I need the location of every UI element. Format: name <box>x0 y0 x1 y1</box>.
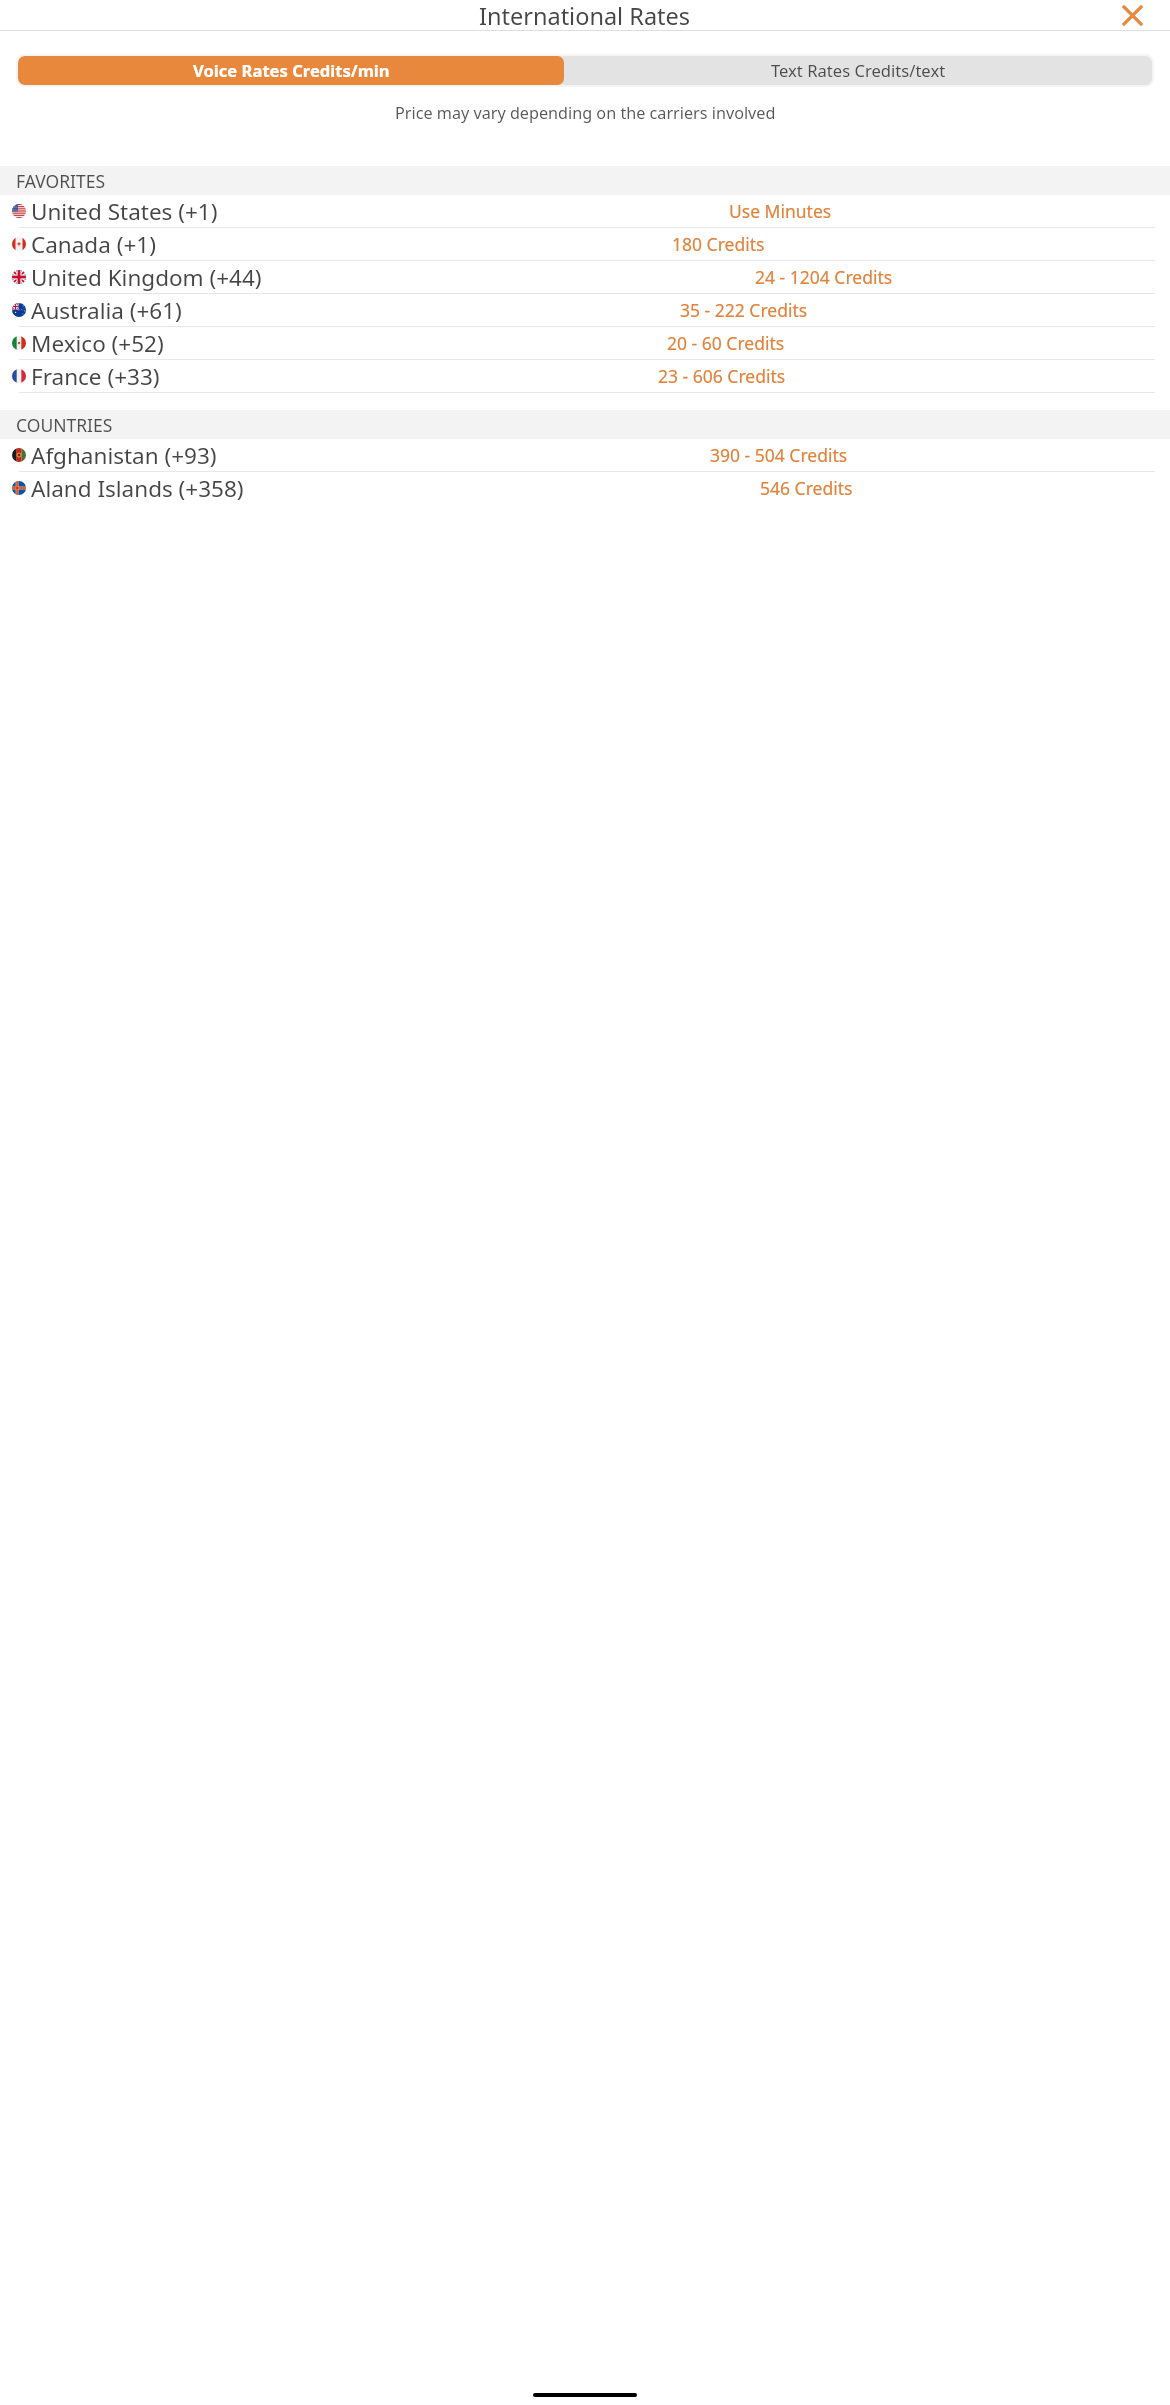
staticText: 35 - 222 Credits <box>680 298 808 322</box>
button[interactable]: United Kingdom (+44) <box>0 261 1170 293</box>
staticText: 180 Credits <box>672 232 765 256</box>
staticText: United States (+1) <box>31 196 218 227</box>
staticText: 546 Credits <box>760 476 853 500</box>
staticText: 20 - 60 Credits <box>667 331 785 355</box>
staticText: International Rates <box>479 0 691 30</box>
staticText: Australia (+61) <box>31 295 182 326</box>
button[interactable]: Mexico (+52) <box>0 327 1170 359</box>
staticText: FAVORITES <box>16 169 106 193</box>
button[interactable]: United States (+1) <box>0 195 1170 227</box>
staticText: Use Minutes <box>729 199 832 223</box>
staticText: Voice Rates Credits/min <box>193 59 390 82</box>
staticText: COUNTRIES <box>16 413 113 437</box>
staticText: Price may vary depending on the carriers… <box>395 102 776 124</box>
button[interactable]: Close <box>1115 0 1149 30</box>
staticText: 24 - 1204 Credits <box>755 265 893 289</box>
button[interactable]: Afghanistan (+93) <box>0 439 1170 471</box>
staticText: 23 - 606 Credits <box>658 364 786 388</box>
staticText: 390 - 504 Credits <box>710 443 848 467</box>
button[interactable]: France (+33) <box>0 360 1170 392</box>
button[interactable]: Australia (+61) <box>0 294 1170 326</box>
staticText: Aland Islands (+358) <box>31 473 244 504</box>
staticText: Text Rates Credits/text <box>771 59 946 82</box>
staticText: Afghanistan (+93) <box>31 440 217 471</box>
button[interactable]: Canada (+1) <box>0 228 1170 260</box>
button[interactable]: Text Rates Credits/text <box>564 56 1152 85</box>
button[interactable]: Voice Rates Credits/min <box>18 56 564 85</box>
staticText: United Kingdom (+44) <box>31 262 262 293</box>
staticText: France (+33) <box>31 361 160 392</box>
button[interactable]: Aland Islands (+358) <box>0 472 1170 504</box>
staticText: Mexico (+52) <box>31 328 164 359</box>
staticText: Canada (+1) <box>31 229 156 260</box>
